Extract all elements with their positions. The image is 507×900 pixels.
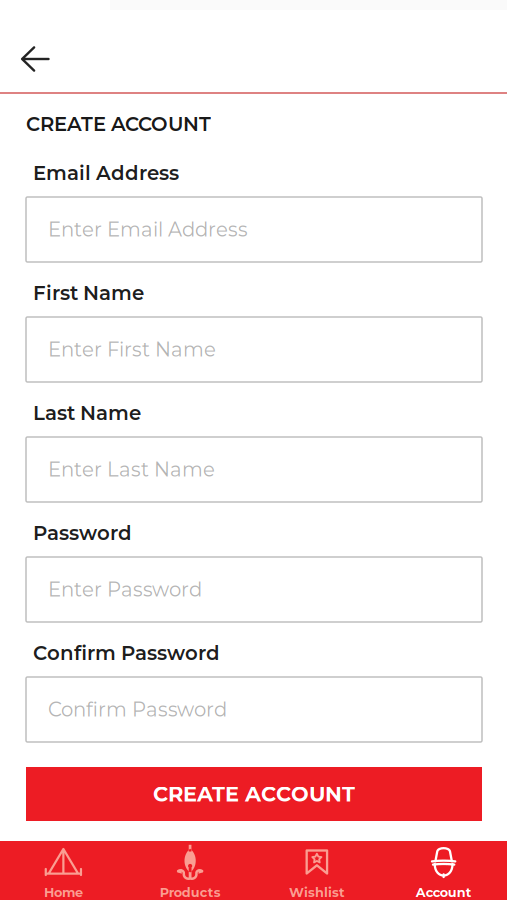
- button[interactable]: Home: [0, 841, 127, 900]
- button[interactable]: Products: [127, 841, 254, 900]
- button[interactable]: Confirm Password: [26, 677, 482, 742]
- staticText: Products: [160, 885, 221, 900]
- staticText: Wishlist: [289, 885, 345, 900]
- staticText: Confirm Password: [48, 698, 227, 721]
- button[interactable]: Enter Email Address: [26, 197, 482, 262]
- staticText: CREATE ACCOUNT: [26, 112, 211, 136]
- staticText: Account: [416, 885, 472, 900]
- button[interactable]: Wishlist: [253, 841, 380, 900]
- staticText: Enter Password: [48, 578, 202, 601]
- button[interactable]: Enter Password: [26, 557, 482, 622]
- button[interactable]: Back: [3, 30, 67, 88]
- staticText: Enter Email Address: [48, 218, 248, 241]
- staticText: Last Name: [33, 401, 141, 425]
- staticText: Email Address: [33, 161, 179, 185]
- staticText: First Name: [33, 281, 144, 305]
- staticText: Enter First Name: [48, 338, 216, 361]
- staticText: Home: [44, 885, 83, 900]
- staticText: Confirm Password: [33, 641, 220, 665]
- button[interactable]: Account: [380, 841, 507, 900]
- button[interactable]: Enter First Name: [26, 317, 482, 382]
- staticText: CREATE ACCOUNT: [153, 781, 355, 807]
- staticText: Enter Last Name: [48, 458, 215, 481]
- button[interactable]: Enter Last Name: [26, 437, 482, 502]
- staticText: Password: [33, 521, 132, 545]
- button[interactable]: CREATE ACCOUNT: [26, 767, 482, 821]
